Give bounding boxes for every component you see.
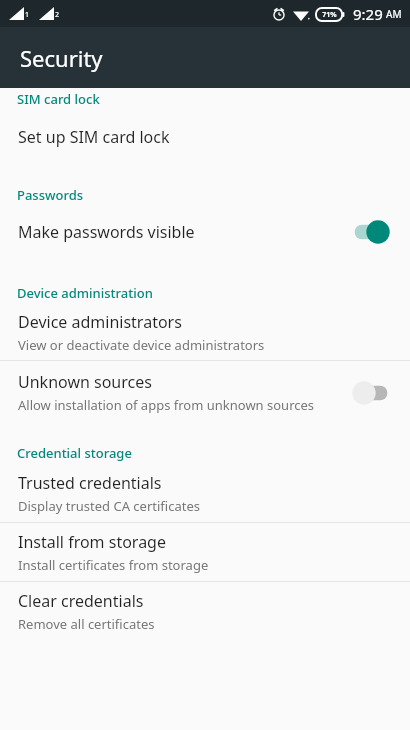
staticText: Make passwords visible [18, 221, 195, 243]
staticText: Passwords [17, 186, 84, 204]
button[interactable]: Clear credentials [0, 582, 410, 640]
staticText: 2 [55, 10, 60, 20]
staticText: View or deactivate device administrators [18, 336, 265, 354]
staticText: Credential storage [17, 444, 132, 462]
staticText: Set up SIM card lock [18, 126, 170, 148]
staticText: Device administrators [18, 311, 182, 333]
staticText: SIM card lock [17, 90, 100, 108]
button[interactable]: Device administrators [0, 304, 410, 360]
button[interactable]: Unknown sources [0, 361, 410, 424]
staticText: Install certificates from storage [18, 556, 209, 574]
staticText: Device administration [17, 284, 153, 302]
staticText: 71% [322, 10, 337, 20]
staticText: Security [20, 43, 103, 73]
button[interactable]: Install from storage [0, 523, 410, 581]
button[interactable]: Trusted credentials [0, 464, 410, 522]
staticText: Trusted credentials [18, 472, 162, 494]
staticText: Install from storage [18, 531, 166, 553]
button[interactable]: Make passwords visible [0, 206, 410, 258]
staticText: Display trusted CA certificates [18, 497, 200, 515]
staticText: Allow installation of apps from unknown … [18, 396, 315, 414]
staticText: Clear credentials [18, 590, 144, 612]
staticText: 1 [25, 10, 30, 20]
staticText: Unknown sources [18, 371, 152, 393]
staticText: AM [386, 7, 402, 21]
button[interactable]: Switch on [350, 219, 392, 245]
staticText: 9:29 [353, 4, 383, 24]
staticText: Remove all certificates [18, 615, 155, 633]
button[interactable]: Switch off [350, 380, 392, 406]
button[interactable]: Set up SIM card lock [0, 108, 410, 166]
